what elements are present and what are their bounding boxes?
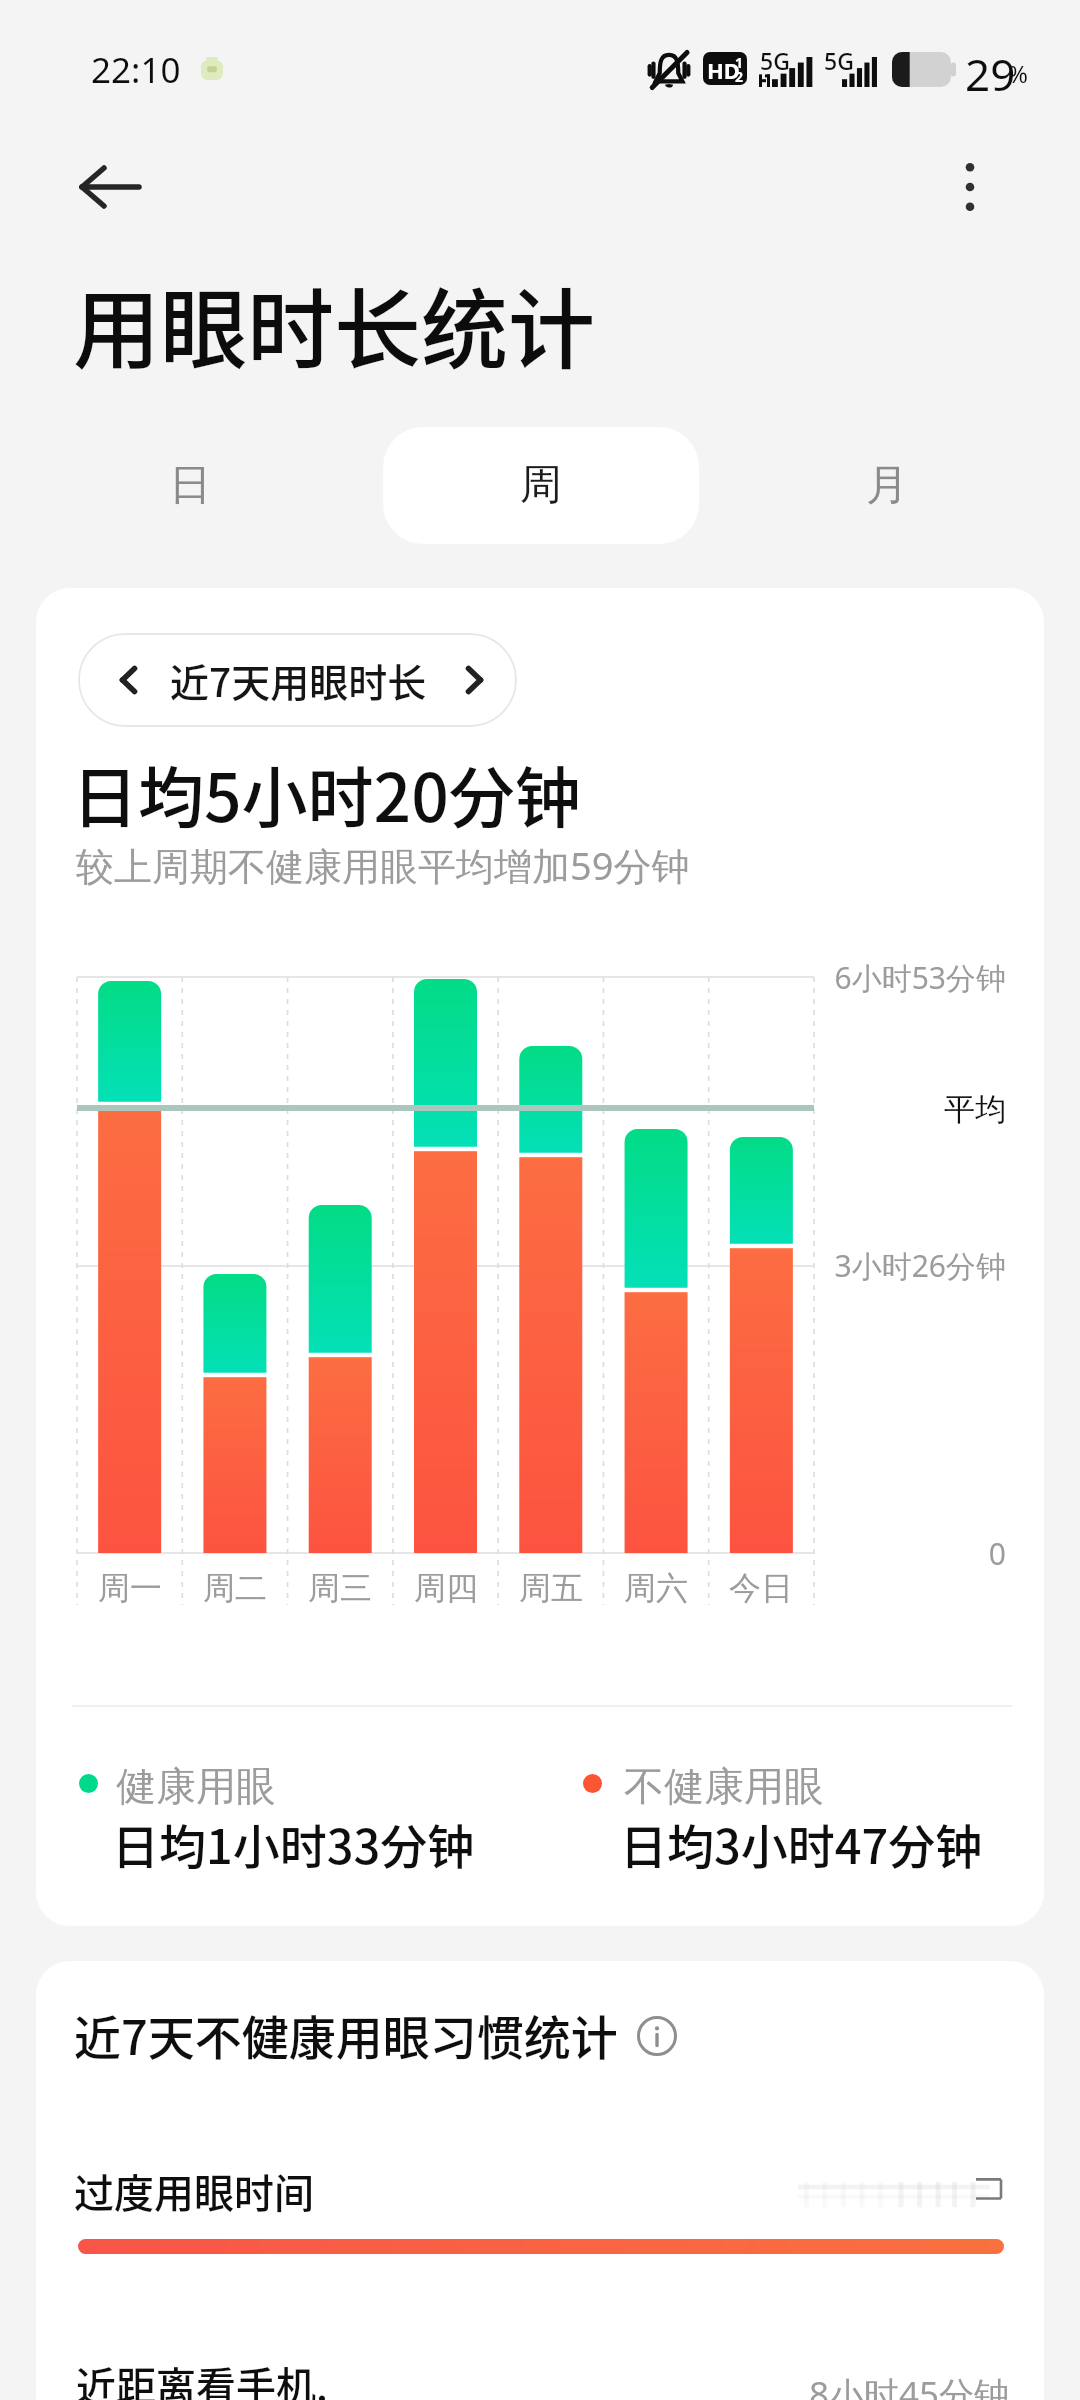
staticText: 近7天不健康用眼习惯统计 — [74, 2000, 618, 2068]
button[interactable]: More options — [920, 137, 1020, 237]
button[interactable]: 周 — [383, 427, 699, 544]
staticText: 6小时53分钟 — [640, 957, 1006, 998]
staticText: 今日 — [701, 1568, 821, 1608]
staticText: 日 — [169, 459, 211, 512]
staticText: 29 — [965, 44, 1016, 104]
staticText: 周二 — [175, 1568, 295, 1608]
button[interactable]: 月 — [731, 427, 1043, 544]
button[interactable]: Back — [60, 137, 160, 237]
staticText: 2 — [735, 67, 744, 85]
staticText: 5G — [824, 45, 854, 76]
staticText: 0 — [640, 1533, 1006, 1574]
staticText: 近距离看手机. — [76, 2355, 328, 2400]
staticText: 周三 — [280, 1568, 400, 1608]
staticText: 周六 — [596, 1568, 716, 1608]
staticText: 1 — [735, 53, 744, 72]
staticText: 健康用眼 — [116, 1761, 276, 1811]
staticText: 过度用眼时间 — [74, 2162, 314, 2220]
button[interactable]: 日 — [34, 427, 346, 544]
button[interactable]: 近距离看手机. — [36, 2340, 1044, 2400]
staticText: 日均5小时20分钟 — [72, 745, 581, 841]
staticText: 月 — [866, 459, 908, 512]
staticText: 用眼时长统计 — [73, 261, 595, 387]
staticText: 8小时45分钟 — [640, 2370, 1009, 2400]
button[interactable]: 近7天用眼时长 — [78, 633, 517, 727]
staticText: 22:10 — [91, 46, 181, 94]
staticText: HD — [707, 55, 740, 85]
staticText: 平均 — [640, 1090, 1006, 1129]
staticText: 周五 — [491, 1568, 611, 1608]
staticText: 周一 — [70, 1568, 190, 1608]
staticText: 周 — [520, 459, 562, 512]
button[interactable]: Info — [629, 2008, 685, 2064]
staticText: 近7天用眼时长 — [170, 652, 427, 708]
button[interactable]: 过度用眼时间 — [36, 2145, 1044, 2275]
staticText: % — [1008, 57, 1028, 90]
staticText: 不健康用眼 — [624, 1761, 824, 1811]
staticText: 周四 — [386, 1568, 506, 1608]
staticText: 日均3小时47分钟 — [620, 1809, 983, 1877]
staticText: 较上周期不健康用眼平均增加59分钟 — [76, 839, 690, 891]
staticText: 日均1小时33分钟 — [112, 1809, 475, 1877]
staticText: 5G — [760, 45, 790, 76]
staticText: 3小时26分钟 — [640, 1245, 1006, 1286]
